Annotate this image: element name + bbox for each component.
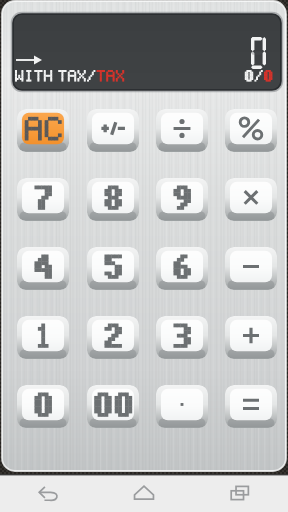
- button[interactable]: Multiply: [225, 178, 277, 221]
- button[interactable]: 1: [17, 316, 69, 359]
- button[interactable]: Decimal point: [156, 385, 208, 428]
- button[interactable]: Home: [96, 474, 192, 512]
- button[interactable]: 0: [17, 385, 69, 428]
- button[interactable]: Double zero: [87, 385, 139, 428]
- button[interactable]: All clear: [17, 109, 69, 152]
- button[interactable]: Minus: [225, 247, 277, 290]
- button[interactable]: Equals: [225, 385, 277, 428]
- button[interactable]: 7: [17, 178, 69, 221]
- button[interactable]: Percent: [225, 109, 277, 152]
- button[interactable]: Divide: [156, 109, 208, 152]
- button[interactable]: 2: [87, 316, 139, 359]
- button[interactable]: 5: [87, 247, 139, 290]
- button[interactable]: 8: [87, 178, 139, 221]
- button[interactable]: 4: [17, 247, 69, 290]
- button[interactable]: Back: [0, 474, 96, 512]
- button[interactable]: 3: [156, 316, 208, 359]
- button[interactable]: 9: [156, 178, 208, 221]
- button[interactable]: Plus: [225, 316, 277, 359]
- button[interactable]: Recent apps: [192, 474, 288, 512]
- button[interactable]: Plus minus: [87, 109, 139, 152]
- button[interactable]: 6: [156, 247, 208, 290]
